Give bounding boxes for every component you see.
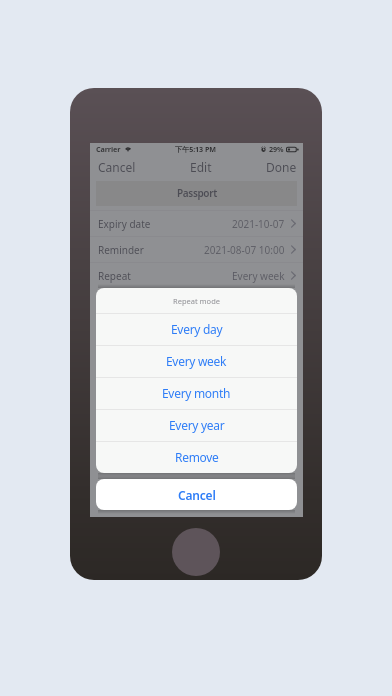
staticText: Repeat: [98, 269, 131, 283]
staticText: Done: [266, 159, 297, 175]
staticText: Reminder: [98, 243, 144, 257]
button[interactable]: Reminder: [90, 236, 303, 262]
staticText: Expiry date: [98, 217, 151, 231]
button[interactable]: Home: [172, 528, 220, 576]
staticText: Every week: [232, 269, 285, 283]
button[interactable]: Done: [266, 159, 297, 175]
button[interactable]: Every year: [96, 409, 297, 441]
button[interactable]: Every day: [96, 313, 297, 345]
button[interactable]: Passport: [96, 181, 297, 206]
staticText: 下午5:13 PM: [175, 144, 216, 154]
staticText: Cancel: [98, 159, 136, 175]
button[interactable]: Remove: [96, 441, 297, 473]
staticText: Passport: [177, 186, 217, 200]
staticText: 2021-10-07: [232, 217, 285, 231]
button[interactable]: Edit: [190, 159, 212, 175]
button[interactable]: Repeat: [90, 262, 303, 288]
staticText: Edit: [190, 159, 212, 175]
button[interactable]: Every month: [96, 377, 297, 409]
staticText: Every week: [166, 353, 227, 369]
staticText: Every day: [171, 321, 223, 337]
staticText: Repeat mode: [173, 296, 220, 306]
staticText: Cancel: [178, 487, 216, 503]
button[interactable]: Cancel: [96, 479, 297, 510]
staticText: Remove: [175, 449, 219, 465]
staticText: 2021-08-07 10:00: [204, 243, 285, 257]
button[interactable]: Cancel: [98, 159, 136, 175]
button[interactable]: Every week: [96, 345, 297, 377]
staticText: Every month: [162, 385, 231, 401]
staticText: Every year: [169, 417, 225, 433]
staticText: 29%: [269, 144, 284, 154]
button[interactable]: Expiry date: [90, 210, 303, 236]
staticText: Carrier: [96, 144, 121, 154]
